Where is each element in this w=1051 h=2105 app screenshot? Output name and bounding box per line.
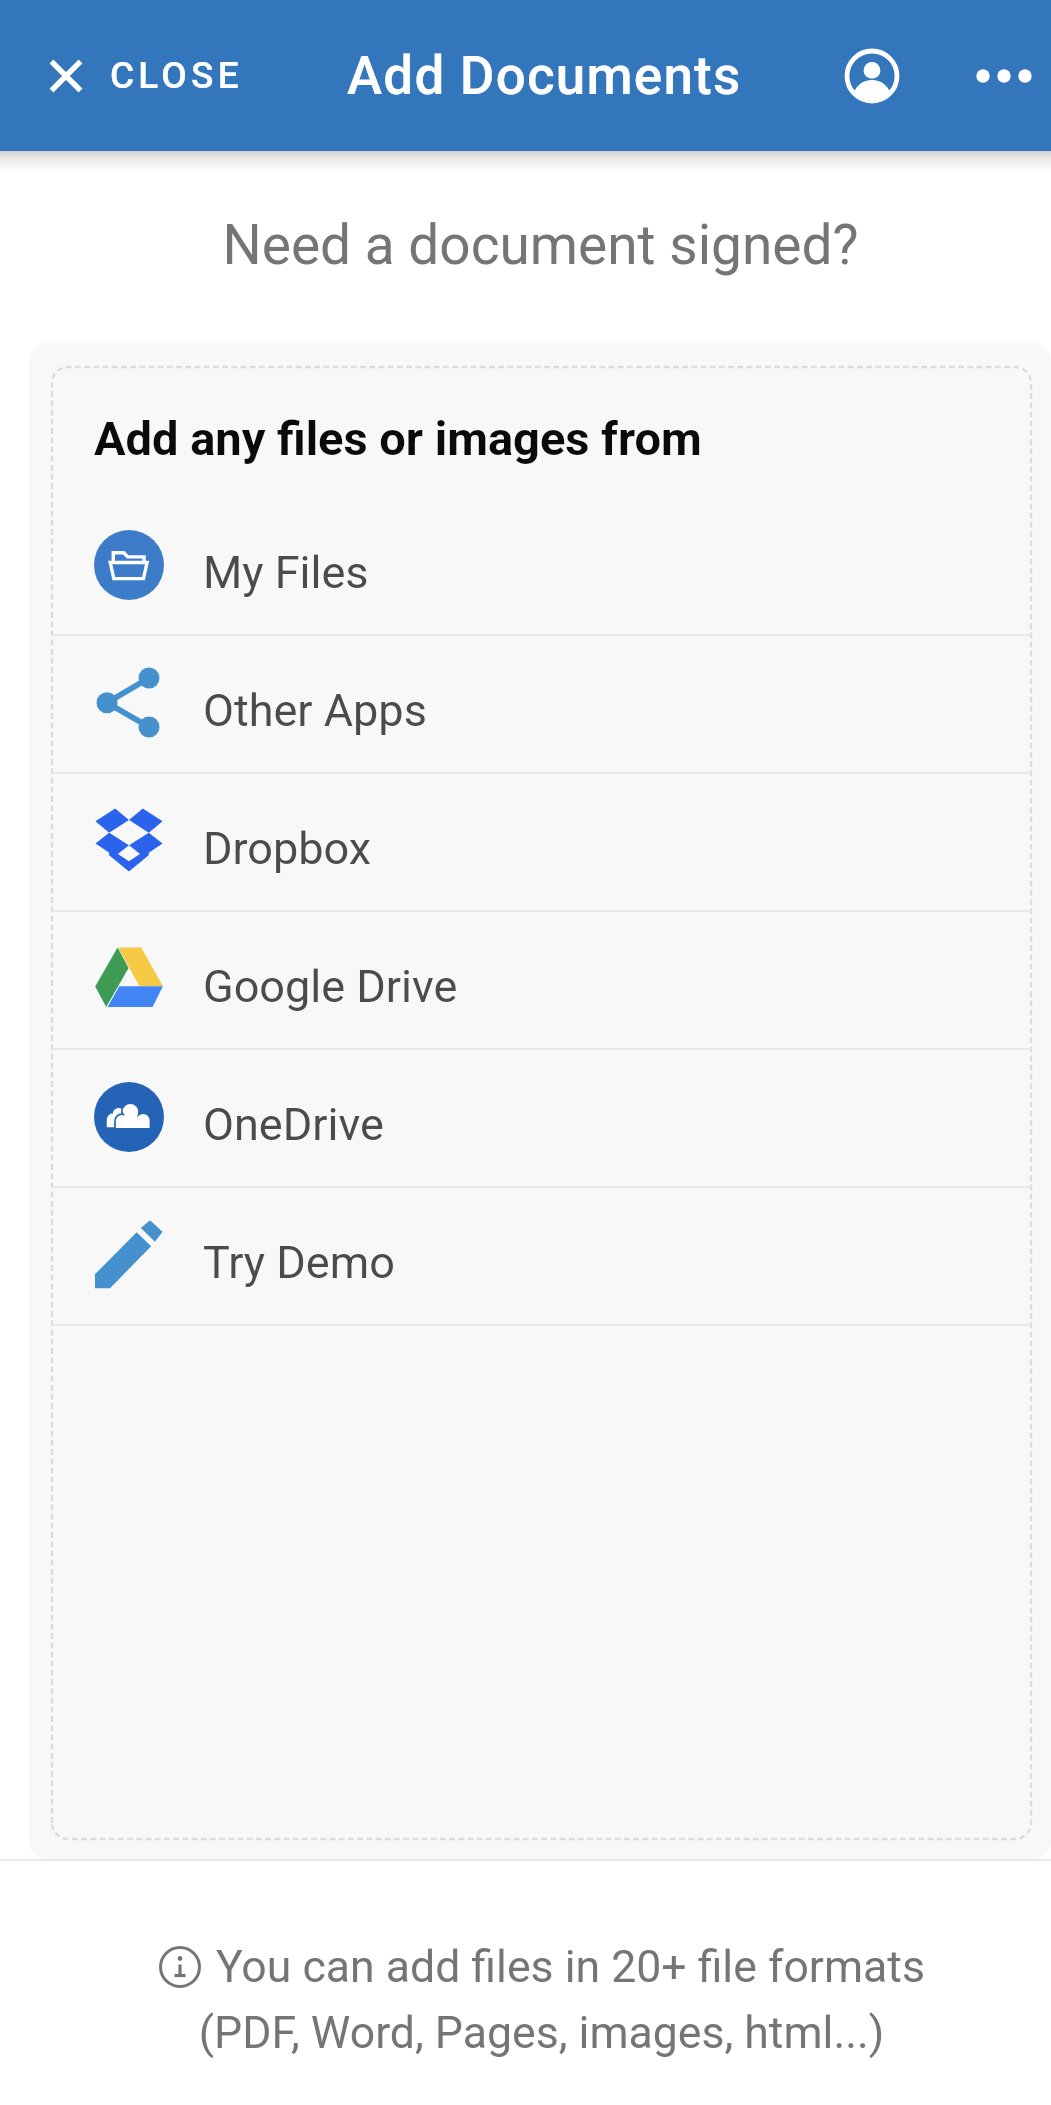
button[interactable]: Google Drive: [29, 912, 1051, 1050]
button[interactable]: Account: [824, 28, 920, 124]
staticText: Dropbox: [203, 822, 372, 875]
staticText: Try Demo: [203, 1236, 395, 1289]
staticText: You can add files in 20+ file formats: [216, 1941, 925, 1993]
staticText: (PDF, Word, Pages, images, html...): [32, 2007, 1051, 2059]
staticText: Add any files or images from: [94, 411, 702, 466]
staticText: Other Apps: [203, 684, 427, 737]
button[interactable]: Other Apps: [29, 636, 1051, 774]
staticText: My Files: [203, 546, 369, 599]
button[interactable]: More options: [956, 28, 1051, 123]
button[interactable]: Try Demo: [29, 1188, 1051, 1326]
button[interactable]: My Files: [29, 498, 1051, 636]
staticText: CLOSE: [110, 54, 243, 97]
staticText: OneDrive: [203, 1098, 384, 1151]
button[interactable]: CLOSE: [30, 32, 267, 119]
staticText: Need a document signed?: [30, 213, 1051, 277]
staticText: Google Drive: [203, 960, 458, 1013]
button[interactable]: Dropbox: [29, 774, 1051, 912]
button[interactable]: OneDrive: [29, 1050, 1051, 1188]
staticText: Add Documents: [347, 45, 742, 107]
